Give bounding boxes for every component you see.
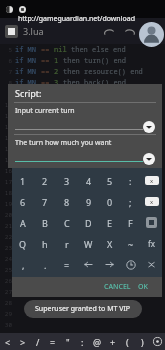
button[interactable]: Preview [150, 333, 165, 350]
button[interactable]: 2 [34, 170, 56, 191]
button[interactable]: + [105, 333, 120, 350]
button[interactable]: : [120, 170, 141, 191]
button[interactable]: > [15, 333, 30, 350]
staticText: + [110, 336, 116, 348]
staticText: 29 [0, 310, 12, 318]
button[interactable]: / [30, 333, 45, 350]
staticText: == [41, 45, 54, 55]
staticText: fx [148, 238, 155, 249]
staticText: A [20, 217, 26, 229]
button[interactable]: 8 [56, 191, 78, 212]
staticText: http://gameguardian.net/download [18, 14, 135, 24]
button[interactable]: Undo [99, 21, 119, 41]
staticText: 27 [0, 288, 12, 296]
button[interactable]: h [34, 233, 56, 254]
staticText: / [36, 336, 40, 348]
button[interactable]: : [75, 333, 90, 350]
staticText: 14 [0, 145, 12, 153]
button[interactable]: B [34, 212, 56, 233]
staticText: ; [129, 196, 132, 208]
button[interactable]: @ [90, 333, 105, 350]
staticText: 18 [0, 189, 12, 197]
staticText: 28 [0, 299, 12, 307]
button[interactable]: CANCEL [104, 282, 131, 292]
staticText: then resource() end [63, 67, 143, 77]
staticText: 12 [0, 123, 12, 131]
staticText: Script: [15, 87, 42, 99]
staticText: 20 [0, 211, 12, 219]
staticText: = [50, 336, 56, 348]
button[interactable]: ; [120, 191, 141, 212]
button[interactable]: F [120, 212, 141, 233]
button[interactable]: " [60, 333, 75, 350]
staticText: 24 [0, 255, 12, 263]
staticText: C [64, 217, 70, 229]
staticText: 3 [54, 78, 63, 88]
staticText: 5 [0, 46, 12, 54]
staticText: if MN [15, 67, 41, 77]
button[interactable]: , [12, 254, 34, 275]
button[interactable]: Stop script [5, 25, 18, 38]
staticText: The turn how much you want [15, 138, 112, 148]
button[interactable]: D [78, 212, 99, 233]
button[interactable] [99, 254, 120, 275]
button[interactable]: 6 [12, 191, 34, 212]
button[interactable]: W [78, 233, 99, 254]
button[interactable]: X [99, 233, 120, 254]
staticText: == [41, 78, 54, 88]
button[interactable]: 5 [99, 170, 120, 191]
button[interactable]: ~ [120, 233, 141, 254]
button[interactable]: < [0, 333, 15, 350]
button[interactable] [78, 254, 99, 275]
button[interactable]: Q [12, 233, 34, 254]
staticText: F [128, 217, 133, 229]
button[interactable]: 9 [78, 191, 99, 212]
staticText: if MN [15, 78, 41, 88]
staticText: : [81, 336, 84, 348]
button[interactable]: chip [141, 212, 162, 233]
staticText: = [64, 259, 70, 271]
staticText: if MN [15, 45, 41, 55]
button[interactable]: OK [138, 282, 148, 292]
button[interactable]: fx [141, 233, 162, 254]
staticText: 8 [0, 79, 12, 87]
staticText: 6 [0, 57, 12, 65]
button[interactable]: 4 [78, 170, 99, 191]
button[interactable]: 0 [99, 191, 120, 212]
staticText: if MN [15, 56, 41, 66]
staticText: 1 [20, 175, 26, 187]
button[interactable]: A [12, 212, 34, 233]
staticText: 1 [54, 56, 63, 66]
staticText: then turn() end [63, 56, 126, 66]
staticText: 7 [42, 196, 48, 208]
staticText: then back() end [63, 78, 126, 88]
staticText: 5 [107, 175, 113, 187]
button[interactable]: ( [120, 333, 135, 350]
staticText: == [41, 67, 54, 77]
button[interactable]: C [56, 212, 78, 233]
button[interactable]: Show suggestions [143, 153, 155, 165]
button[interactable] [120, 254, 141, 275]
button[interactable]: bksp2 [141, 191, 162, 212]
button[interactable]: = [56, 254, 78, 275]
staticText: x [150, 198, 154, 206]
button[interactable]: 1 [12, 170, 34, 191]
staticText: nil [54, 45, 71, 55]
button[interactable]: 3 [56, 170, 78, 191]
staticText: 8 [64, 196, 70, 208]
button[interactable]: E [99, 212, 120, 233]
button[interactable]: = [45, 333, 60, 350]
button[interactable]: Show suggestions [143, 121, 155, 133]
staticText: ( [126, 336, 129, 348]
button[interactable]: r [56, 233, 78, 254]
button[interactable]: ) [135, 333, 150, 350]
staticText: D [85, 217, 92, 229]
button[interactable]: Profile [139, 22, 164, 47]
staticText: B [42, 217, 48, 229]
button[interactable]: 7 [34, 191, 56, 212]
button[interactable]: Redo [119, 21, 139, 41]
button[interactable]: . [34, 254, 56, 275]
button[interactable]: bksp [141, 170, 162, 191]
button[interactable]: collapse [141, 254, 162, 275]
staticText: : [129, 175, 132, 187]
